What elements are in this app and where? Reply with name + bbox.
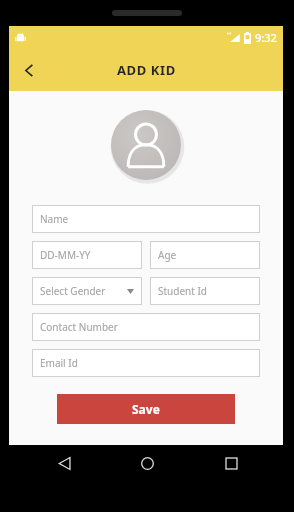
staticText: DD-MM-YY [40,248,91,262]
button[interactable]: Back [44,445,84,481]
button[interactable]: Contact Number [32,313,260,341]
button[interactable]: Home [127,445,167,481]
staticText: Select Gender [40,284,106,298]
button[interactable]: Email Id [32,349,260,377]
button[interactable]: Recent apps [211,445,251,481]
staticText: Student Id [158,284,207,298]
button[interactable]: Age [150,241,260,269]
button[interactable]: Back [9,50,49,90]
staticText: Contact Number [40,320,118,334]
staticText: Save [132,401,160,417]
staticText: Name [40,212,69,226]
button[interactable]: Select Gender [32,277,142,305]
button[interactable]: DD-MM-YY [32,241,142,269]
button[interactable]: Save [57,394,235,424]
staticText: Email Id [40,356,78,370]
staticText: ADD KID [117,61,176,79]
button[interactable]: Student Id [150,277,260,305]
staticText: 9:32 [255,30,277,45]
button[interactable]: Name [32,205,260,233]
staticText: Age [158,248,177,262]
